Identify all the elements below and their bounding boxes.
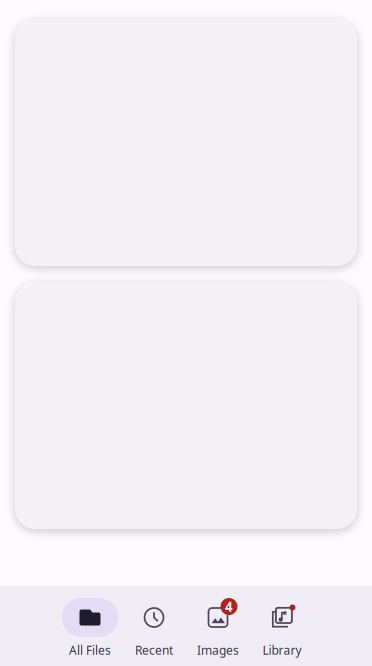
button[interactable]: All Files [58,586,122,666]
staticText: All Files [69,642,111,658]
button[interactable]: Library [250,586,314,666]
staticText: Images [197,642,239,658]
staticText: 4 [225,598,233,615]
staticText: Library [262,642,301,658]
button[interactable]: Recent [122,586,186,666]
button[interactable]: Images, 4 [186,586,250,666]
staticText: Recent [135,642,173,658]
